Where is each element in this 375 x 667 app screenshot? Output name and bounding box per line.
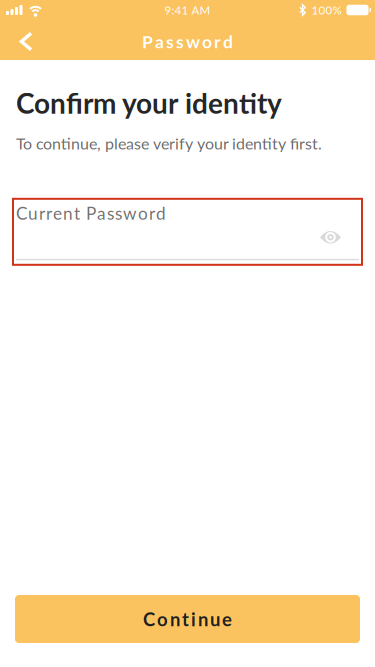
button[interactable]: C o n t i n u e <box>15 595 360 643</box>
staticText: 100% <box>311 3 341 17</box>
staticText: P a s s w o r d <box>142 31 233 52</box>
staticText: To continue, please verify your identity… <box>16 134 322 153</box>
staticText: Confirm your identity <box>16 86 282 120</box>
staticText: C u r r e n t P a s s w o r d <box>16 203 166 223</box>
staticText: 9:41 AM <box>164 3 210 17</box>
button[interactable]: Back <box>0 19 45 61</box>
button[interactable]: Show password <box>312 223 349 252</box>
staticText: C o n t i n u e <box>143 608 232 630</box>
